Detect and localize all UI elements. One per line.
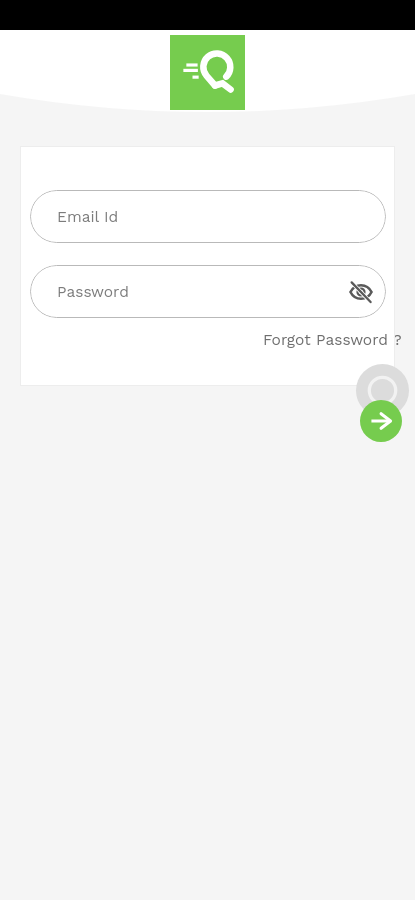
button[interactable]: Email Id [30, 190, 386, 243]
button[interactable]: Show password [346, 277, 376, 307]
button[interactable]: Password [30, 265, 386, 318]
staticText: Password [57, 283, 129, 301]
button[interactable]: Sign in [360, 400, 402, 442]
staticText: Email Id [57, 208, 119, 226]
button[interactable]: Forgot Password ? [258, 327, 407, 353]
staticText: Forgot Password ? [263, 331, 402, 349]
